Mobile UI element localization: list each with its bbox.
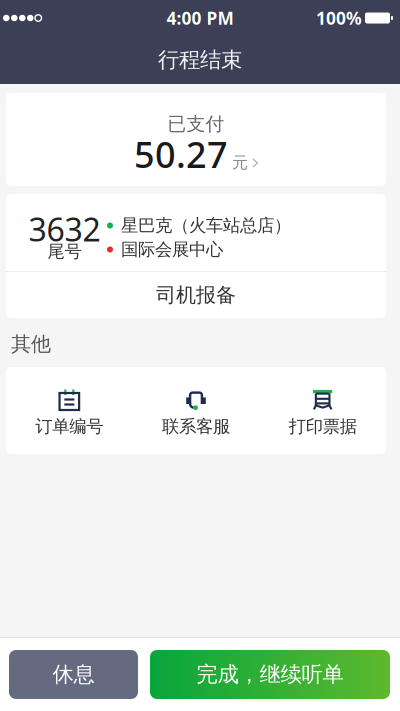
button[interactable]: 休息 (9, 650, 138, 699)
staticText: 联系客服 (162, 416, 230, 437)
staticText: 打印票据 (289, 416, 357, 437)
staticText: 已支付 (167, 112, 224, 135)
button[interactable]: 订单编号 (6, 367, 133, 454)
button[interactable]: 联系客服 (133, 367, 259, 454)
staticText: 行程结束 (158, 47, 242, 73)
staticText: 星巴克（火车站总店） (121, 215, 291, 236)
staticText: 其他 (11, 332, 51, 356)
staticText: 完成，继续听单 (196, 661, 343, 688)
staticText: 订单编号 (35, 416, 103, 437)
staticText: 司机报备 (156, 283, 236, 307)
staticText: 100% (316, 6, 362, 29)
button[interactable]: 完成，继续听单 (150, 650, 390, 699)
staticText: 3632 (28, 208, 100, 250)
staticText: 休息 (52, 661, 94, 688)
staticText: 国际会展中心 (121, 239, 223, 260)
button[interactable]: 打印票据 (259, 367, 386, 454)
staticText: 元 (232, 153, 248, 172)
button[interactable]: 司机报备 (6, 272, 386, 318)
staticText: 尾号 (47, 241, 81, 262)
staticText: 4:00 PM (166, 6, 233, 29)
button[interactable]: 已支付 (6, 93, 386, 186)
staticText: 50.27 (134, 130, 228, 178)
